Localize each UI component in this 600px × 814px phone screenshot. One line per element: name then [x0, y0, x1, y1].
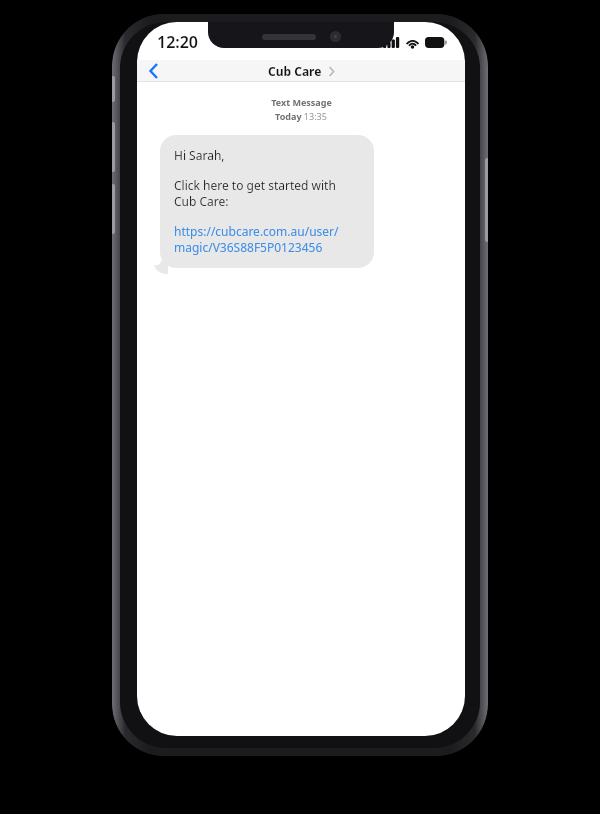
button[interactable]: Back	[137, 60, 171, 82]
staticText: Click here to get started with Cub Care:	[174, 177, 336, 209]
staticText: Hi Sarah,	[174, 147, 225, 163]
button[interactable]: Cub Care	[268, 63, 334, 79]
staticText: Today 13:35	[275, 110, 327, 122]
button[interactable]: https://cubcare.com.au/user/ magic/V36S8…	[174, 223, 339, 255]
button[interactable]: Hi Sarah,	[160, 135, 374, 268]
staticText: Text Message	[271, 96, 332, 108]
staticText: 12:20	[157, 31, 199, 53]
staticText: Cub Care	[268, 63, 322, 79]
